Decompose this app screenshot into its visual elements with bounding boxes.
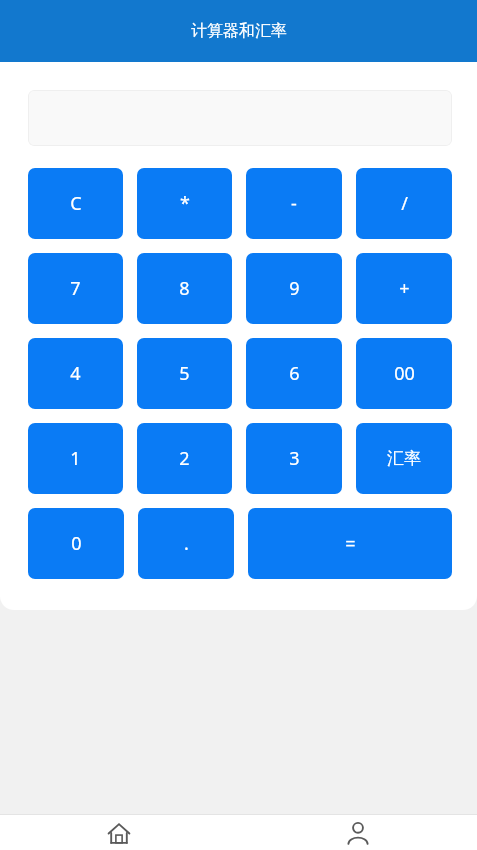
button[interactable]: Home xyxy=(0,815,238,850)
button[interactable]: 00 xyxy=(356,338,452,409)
button[interactable]: - xyxy=(246,168,342,239)
staticText: 5 xyxy=(179,361,190,386)
staticText: * xyxy=(180,191,190,216)
button[interactable]: 计算器和汇率 xyxy=(0,0,477,62)
button[interactable]: 5 xyxy=(137,338,232,409)
button[interactable]: 8 xyxy=(137,253,232,324)
button[interactable]: 3 xyxy=(246,423,342,494)
staticText: 4 xyxy=(70,361,81,386)
staticText: 2 xyxy=(179,446,190,471)
button[interactable]: + xyxy=(356,253,452,324)
staticText: 8 xyxy=(179,276,190,301)
button[interactable]: . xyxy=(138,508,234,579)
button[interactable]: 汇率 xyxy=(356,423,452,494)
button[interactable]: 1 xyxy=(28,423,123,494)
staticText: 计算器和汇率 xyxy=(191,21,287,41)
button[interactable]: 7 xyxy=(28,253,123,324)
staticText: . xyxy=(184,531,189,556)
staticText: 00 xyxy=(394,361,415,386)
staticText: 7 xyxy=(70,276,81,301)
staticText: C xyxy=(70,191,82,216)
button[interactable]: = xyxy=(248,508,452,579)
staticText: 6 xyxy=(289,361,300,386)
staticText: 3 xyxy=(289,446,300,471)
staticText: 1 xyxy=(70,446,81,471)
staticText: - xyxy=(291,191,297,216)
button[interactable]: 6 xyxy=(246,338,342,409)
staticText: 0 xyxy=(71,531,82,556)
button[interactable]: 0 xyxy=(28,508,124,579)
button[interactable]: 9 xyxy=(246,253,342,324)
staticText: / xyxy=(401,191,408,216)
staticText: = xyxy=(345,531,356,556)
button[interactable]: 2 xyxy=(137,423,232,494)
staticText: 9 xyxy=(289,276,300,301)
button[interactable]: Profile xyxy=(238,815,477,850)
button[interactable]: * xyxy=(137,168,232,239)
button[interactable]: 4 xyxy=(28,338,123,409)
staticText: + xyxy=(399,276,410,301)
button[interactable]: C xyxy=(28,168,123,239)
staticText: 汇率 xyxy=(387,448,421,469)
button[interactable]: / xyxy=(356,168,452,239)
